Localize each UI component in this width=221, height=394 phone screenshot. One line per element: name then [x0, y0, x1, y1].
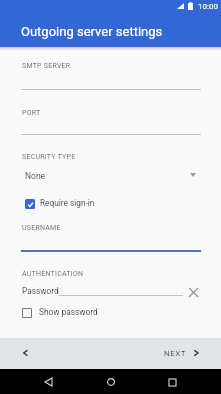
- staticText: None: [25, 171, 46, 181]
- button[interactable]: Back: [40, 374, 56, 390]
- button[interactable]: Require sign-in: [21, 195, 101, 212]
- staticText: Outgoing server settings: [21, 24, 163, 39]
- button[interactable]: Show password: [19, 303, 103, 320]
- staticText: Require sign-in: [40, 198, 95, 208]
- staticText: AUTHENTICATION: [22, 270, 84, 278]
- staticText: USERNAME: [22, 224, 61, 232]
- staticText: Show password: [39, 307, 98, 317]
- button[interactable]: NEXT: [158, 342, 206, 364]
- button[interactable]: Home: [103, 374, 119, 390]
- staticText: Password: [22, 286, 59, 296]
- button[interactable]: None: [21, 166, 201, 186]
- staticText: SMTP SERVER: [22, 62, 71, 70]
- button[interactable]: Clear password: [184, 283, 203, 302]
- staticText: NEXT: [164, 349, 187, 358]
- button[interactable]: Recent apps: [164, 374, 180, 390]
- button[interactable]: Previous: [14, 344, 34, 364]
- staticText: PORT: [22, 109, 41, 117]
- staticText: SECURITY TYPE: [22, 153, 76, 161]
- staticText: 10:00: [198, 2, 218, 11]
